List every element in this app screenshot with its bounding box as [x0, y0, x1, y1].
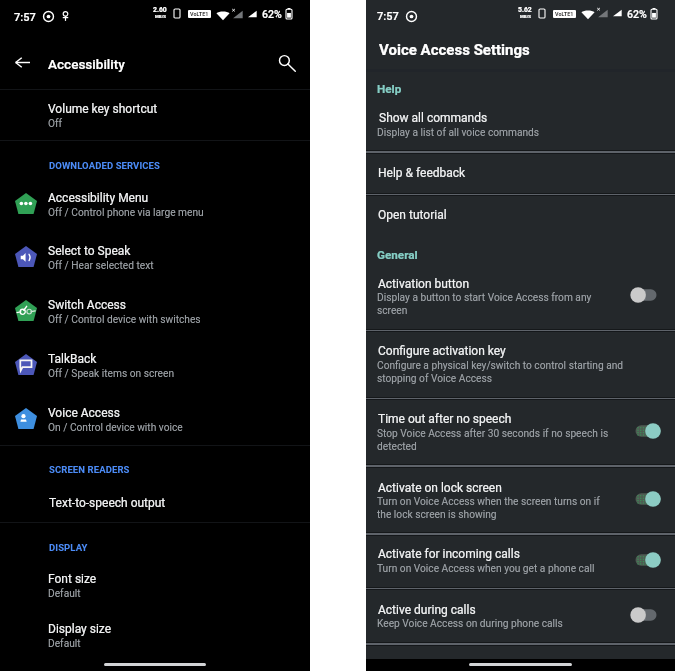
staticText: Activate for incoming calls — [378, 547, 520, 561]
staticText: Keep Voice Access on during phone calls — [377, 618, 612, 630]
staticText: Show all commands — [379, 111, 488, 125]
staticText: Display a list of all voice commands — [377, 127, 540, 139]
staticText: SCREEN READERS — [49, 464, 130, 475]
staticText: Activation button — [378, 277, 470, 291]
staticText: Off / Control device with switches — [48, 314, 201, 326]
staticText: Text-to-speech output — [49, 496, 166, 510]
staticText: 62% — [262, 8, 282, 20]
staticText: Accessibility — [48, 56, 125, 72]
button[interactable]: Help & feedback — [366, 152, 675, 193]
staticText: Off / Hear selected text — [48, 260, 154, 272]
staticText: Active during calls — [378, 603, 476, 617]
staticText: On / Control device with voice — [48, 422, 183, 434]
staticText: Accessibility Menu — [48, 191, 149, 205]
button[interactable]: Activation button — [366, 266, 675, 330]
button[interactable]: Open tutorial — [366, 195, 675, 235]
staticText: 62% — [627, 8, 647, 20]
staticText: Off / Speak items on screen — [48, 368, 175, 380]
staticText: Off — [48, 118, 63, 130]
staticText: 7:57 — [14, 11, 36, 24]
staticText: Open tutorial — [378, 208, 447, 222]
staticText: VoLTE1 — [190, 11, 209, 17]
staticText: Off / Control phone via large menu — [48, 207, 204, 219]
staticText: Configure activation key — [378, 344, 506, 358]
button[interactable]: Active during calls — [366, 589, 675, 643]
staticText: Turn on Voice Access when you get a phon… — [377, 563, 612, 575]
staticText: 7:57 — [377, 10, 399, 23]
staticText: Voice Access Settings — [379, 41, 530, 59]
staticText: DISPLAY — [49, 542, 88, 553]
button[interactable]: Activate for incoming calls — [366, 535, 675, 588]
staticText: Font size — [48, 572, 97, 586]
button[interactable]: Font size — [0, 562, 310, 610]
staticText: Turn on Voice Access when the screen tur… — [377, 496, 612, 520]
button[interactable]: Activate on lock screen — [366, 467, 675, 534]
staticText: 5.62 — [518, 6, 532, 14]
staticText: Display a button to start Voice Access f… — [377, 292, 612, 316]
button[interactable]: Accessibility Menu — [0, 182, 310, 226]
button[interactable]: Configure activation key — [366, 331, 675, 398]
staticText: Select to Speak — [48, 244, 131, 258]
staticText: DOWNLOADED SERVICES — [49, 160, 160, 171]
button[interactable]: Time out after no speech — [366, 399, 675, 465]
button[interactable]: Switch Access — [0, 289, 310, 333]
staticText: Configure a physical key/switch to contr… — [377, 360, 649, 384]
button[interactable]: Search — [267, 41, 309, 83]
staticText: Help & feedback — [378, 166, 466, 180]
staticText: Display size — [48, 622, 112, 636]
button[interactable]: Navigate up — [3, 41, 45, 83]
staticText: Switch Access — [48, 298, 126, 312]
staticText: Default — [48, 638, 81, 650]
button[interactable]: Show all commands — [366, 100, 675, 151]
button[interactable]: Select to Speak — [0, 235, 310, 279]
button[interactable]: Voice Access — [0, 397, 310, 441]
staticText: Time out after no speech — [378, 412, 512, 426]
staticText: Volume key shortcut — [48, 102, 158, 116]
staticText: VoLTE1 — [555, 11, 574, 17]
staticText: General — [377, 248, 418, 262]
staticText: Stop Voice Access after 30 seconds if no… — [377, 428, 612, 452]
staticText: TalkBack — [48, 352, 97, 366]
staticText: Activate on lock screen — [378, 481, 502, 495]
button[interactable]: Volume key shortcut — [0, 90, 310, 140]
button[interactable]: Display size — [0, 612, 310, 660]
staticText: MB/S — [520, 14, 531, 19]
staticText: 2.60 — [153, 6, 167, 14]
staticText: Help — [377, 82, 402, 96]
staticText: Voice Access — [48, 406, 120, 420]
staticText: MB/S — [155, 14, 166, 19]
button[interactable]: TalkBack — [0, 343, 310, 387]
staticText: Default — [48, 588, 81, 600]
button[interactable]: Text-to-speech output — [0, 484, 310, 521]
